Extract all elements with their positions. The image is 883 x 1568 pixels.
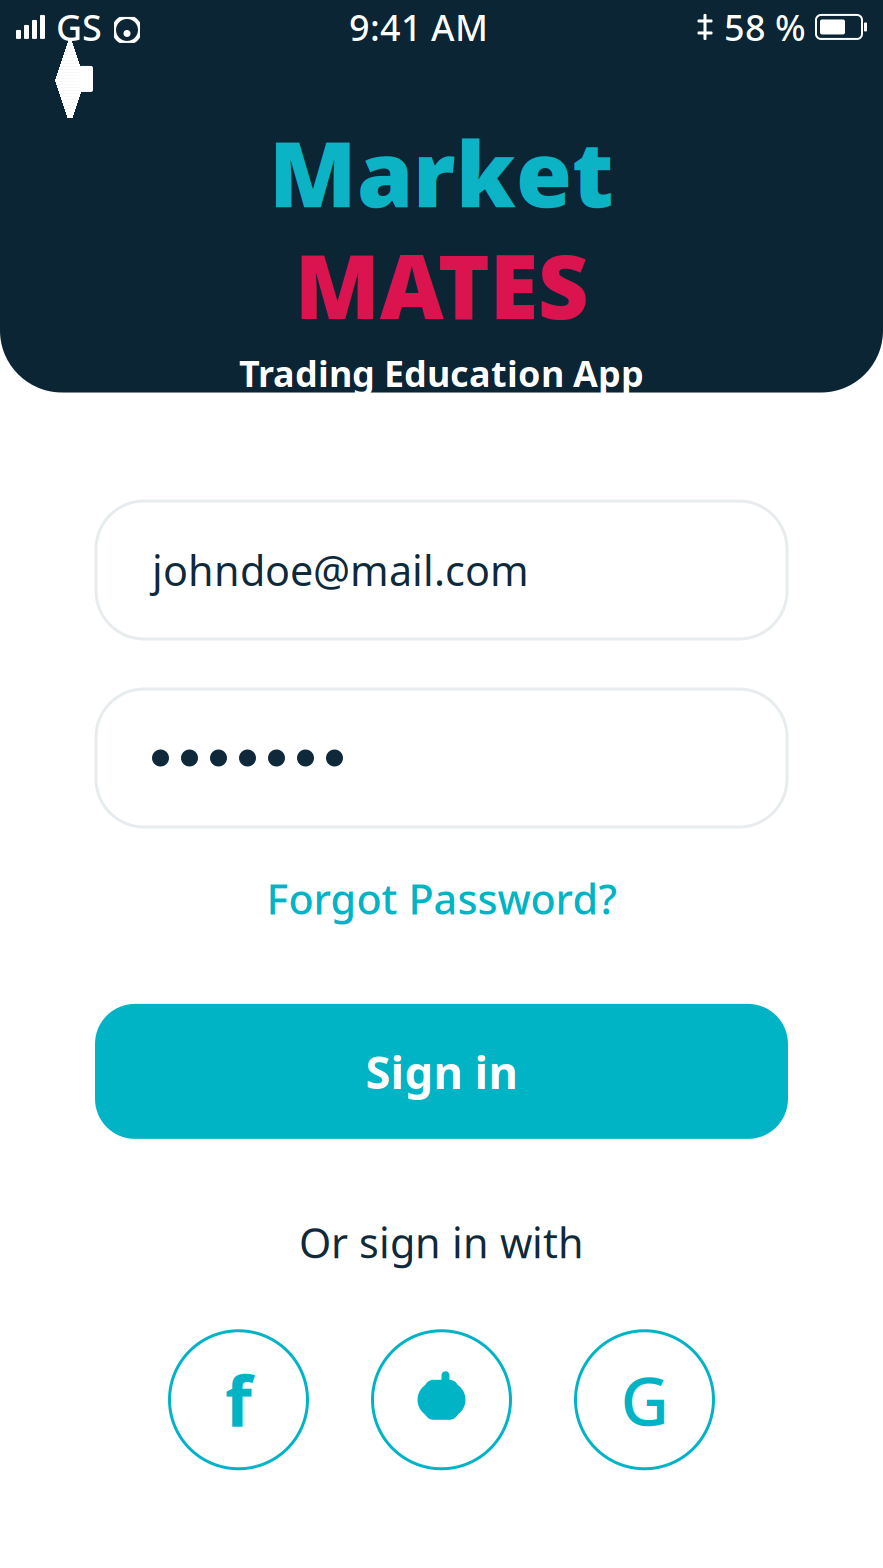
staticText: MATES [294,226,588,343]
staticText: G [620,1355,668,1444]
button[interactable]: johndoe@mail.com [96,501,787,639]
button[interactable]: Facebook [168,1330,308,1470]
staticText: Sign in [365,1041,517,1101]
staticText: Forgot Password? [266,871,616,926]
button[interactable]: Back [38,48,112,110]
staticText: Trading Education App [239,349,644,397]
staticText: 58 % [724,3,806,51]
staticText: 9:41 AM [349,3,488,51]
staticText: f [225,1354,252,1446]
staticText: johndoe@mail.com [152,543,529,597]
button[interactable]: Sign in [95,1004,788,1139]
button[interactable]: Apple [371,1330,511,1470]
staticText: Market [269,112,614,232]
staticText: Or sign in with [299,1215,584,1270]
button[interactable] [96,689,787,827]
button[interactable]: Forgot Password? [246,859,636,938]
button[interactable]: Google [574,1330,714,1470]
staticText: GS [56,3,102,51]
